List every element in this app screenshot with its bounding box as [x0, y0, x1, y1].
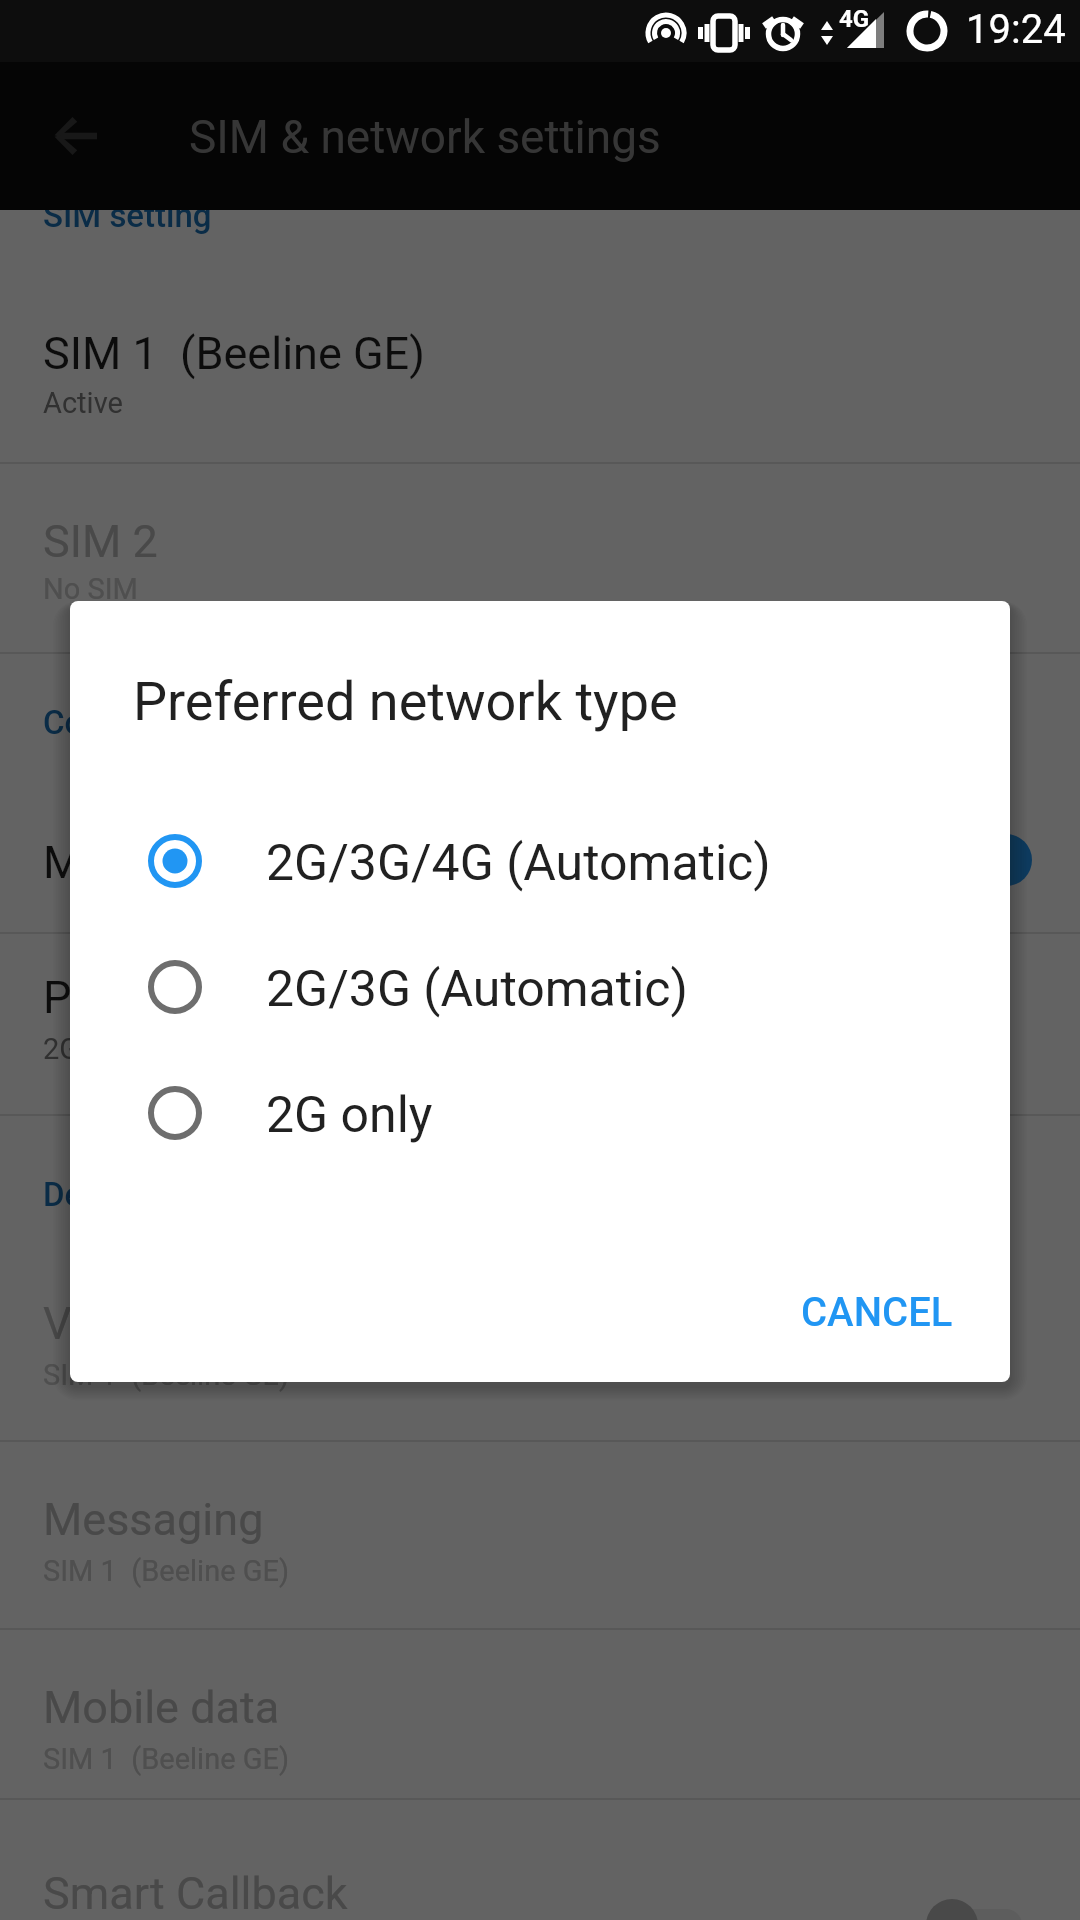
staticText: SIM & network settings	[189, 110, 661, 164]
staticText: Active	[43, 386, 123, 420]
staticText: Mobile data	[43, 1681, 280, 1734]
staticText: 2G/3G/4G (Automatic)	[266, 834, 771, 893]
staticText: SIM 1 (Beeline GE)	[43, 1358, 290, 1392]
button[interactable]: 2G only	[70, 1050, 1010, 1176]
button[interactable]	[0, 1226, 1080, 1440]
staticText: Default SIM for	[43, 1175, 267, 1214]
staticText: 2G/3G/4G (Automatic)	[43, 1032, 336, 1066]
button[interactable]: 2G/3G/4G (Automatic)	[70, 798, 1010, 924]
staticText: SIM setting	[43, 196, 212, 235]
button[interactable]	[0, 1442, 1080, 1628]
staticText: SIM 2	[43, 515, 158, 568]
staticText: Connection	[43, 703, 212, 742]
button[interactable]: CANCEL	[772, 1262, 982, 1362]
staticText: 4G	[839, 5, 870, 33]
staticText: SIM 1 (Beeline GE)	[43, 327, 425, 380]
staticText: Messaging	[43, 1493, 264, 1546]
staticText: No SIM	[43, 572, 138, 606]
staticText: Preferred network type	[133, 670, 678, 733]
staticText: 2G only	[266, 1086, 433, 1145]
button[interactable]: Turn on	[880, 1877, 1050, 1920]
button[interactable]: Back	[32, 94, 116, 178]
staticText: Voice call	[43, 1297, 236, 1350]
staticText: SIM 1 (Beeline GE)	[43, 1554, 290, 1588]
button[interactable]	[0, 1630, 1080, 1798]
button[interactable]	[0, 1800, 1080, 1920]
staticText: Mobile networks	[43, 836, 375, 889]
button[interactable]: Turn off	[880, 812, 1050, 908]
button[interactable]	[0, 934, 1080, 1114]
staticText: SIM 1 (Beeline GE)	[43, 1742, 290, 1776]
button[interactable]: 2G/3G (Automatic)	[70, 924, 1010, 1050]
staticText: 19:24	[966, 6, 1066, 53]
button[interactable]	[0, 464, 1080, 652]
button[interactable]	[0, 760, 1080, 932]
staticText: Preferred network type	[43, 971, 497, 1024]
button[interactable]	[0, 210, 1080, 462]
staticText: Smart Callback	[43, 1867, 348, 1920]
staticText: CANCEL	[801, 1289, 953, 1336]
staticText: 2G/3G (Automatic)	[266, 960, 688, 1019]
